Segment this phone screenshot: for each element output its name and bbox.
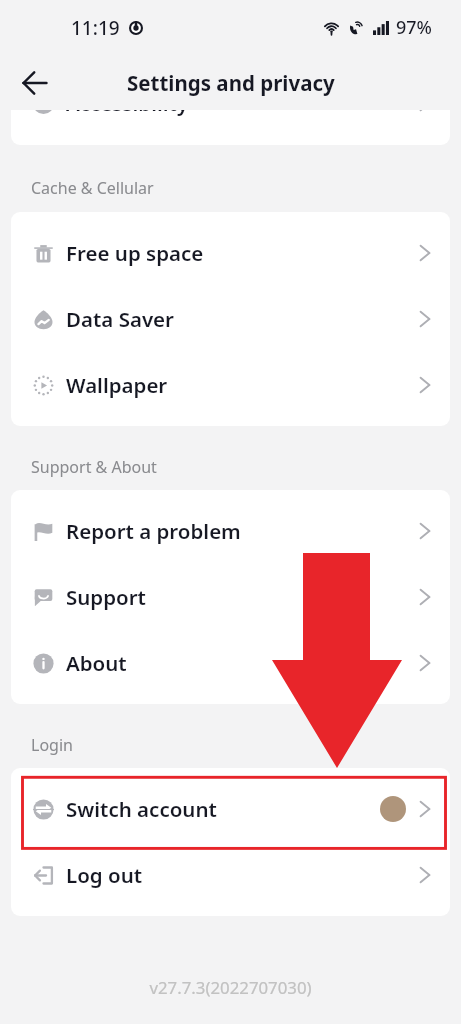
button[interactable]: Wallpaper xyxy=(11,352,450,418)
button[interactable]: Free up space xyxy=(11,220,450,286)
button[interactable]: Support xyxy=(11,564,450,630)
staticText: Report a problem xyxy=(66,517,241,545)
button[interactable]: Report a problem xyxy=(11,498,450,564)
staticText: 11:19 xyxy=(71,15,120,41)
button[interactable]: Data Saver xyxy=(11,286,450,352)
staticText: About xyxy=(66,649,127,677)
staticText: Support & About xyxy=(31,456,157,478)
button[interactable]: Log out xyxy=(11,842,450,908)
button[interactable]: Accessibility xyxy=(11,110,450,136)
staticText: Support xyxy=(66,583,146,611)
staticText: Free up space xyxy=(66,239,204,267)
button[interactable]: About xyxy=(11,630,450,696)
staticText: Wallpaper xyxy=(66,371,168,399)
button[interactable]: Switch account xyxy=(11,776,450,842)
staticText: Accessibility xyxy=(66,110,189,117)
staticText: Switch account xyxy=(66,795,217,823)
staticText: v27.7.3(2022707030) xyxy=(0,976,461,999)
staticText: Log out xyxy=(66,861,143,889)
staticText: Settings and privacy xyxy=(127,69,335,97)
staticText: Data Saver xyxy=(66,305,175,333)
staticText: 97% xyxy=(396,15,432,40)
staticText: Cache & Cellular xyxy=(31,177,154,199)
staticText: Login xyxy=(31,734,73,756)
button[interactable]: Back xyxy=(13,61,57,105)
